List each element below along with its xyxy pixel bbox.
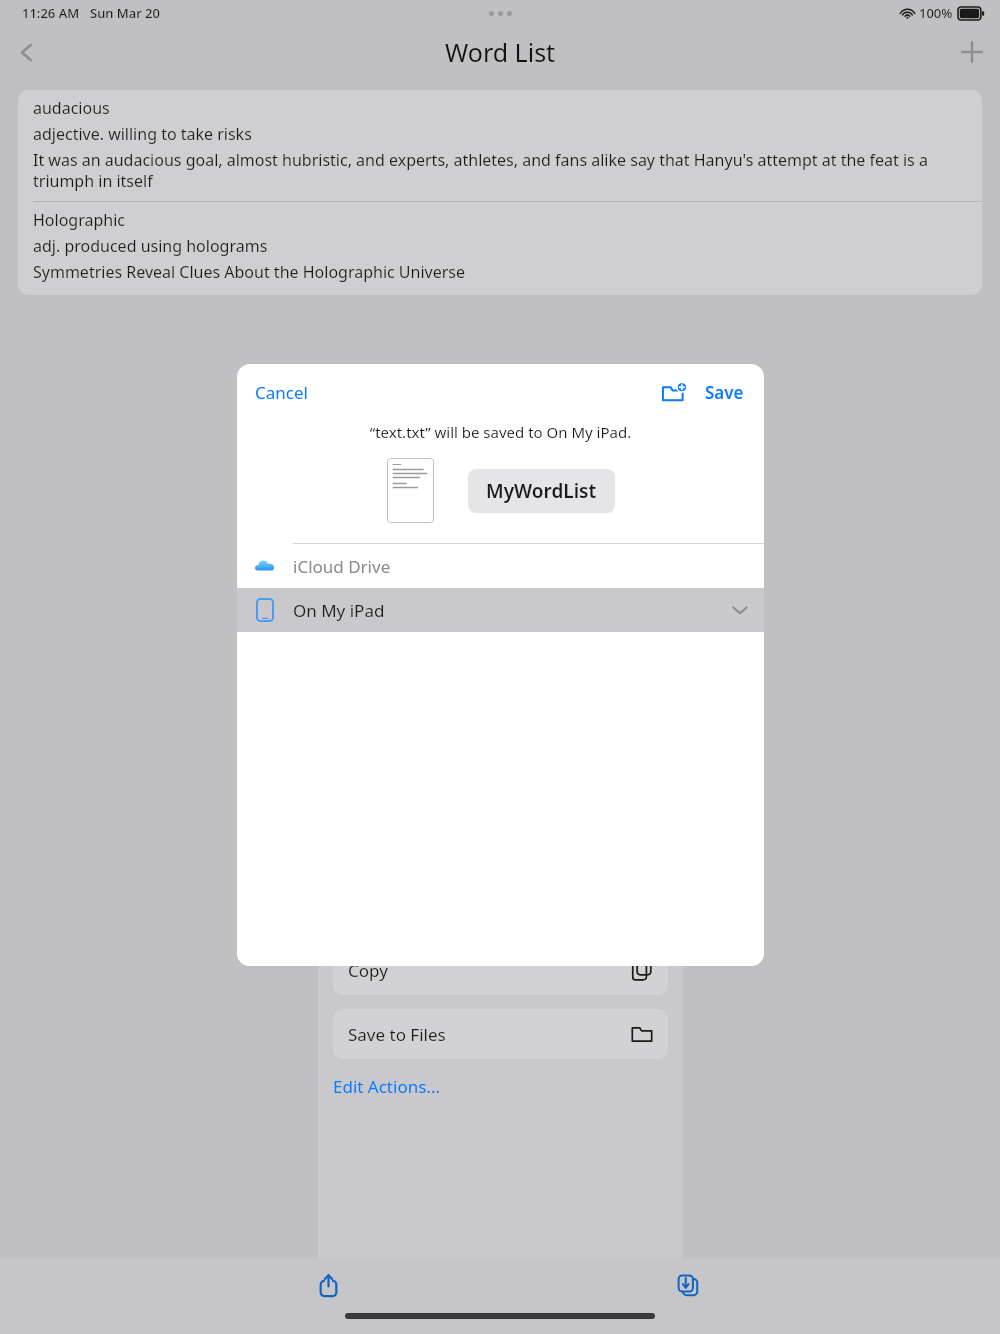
staticText: It was an audacious goal, almost hubrist… bbox=[33, 149, 967, 192]
staticText: Word List bbox=[445, 35, 556, 69]
staticText: On My iPad bbox=[293, 599, 385, 622]
staticText: 11:26 AM bbox=[22, 4, 80, 22]
staticText: 100% bbox=[919, 4, 953, 22]
button[interactable]: Save bbox=[668, 1265, 708, 1305]
staticText: iCloud Drive bbox=[293, 555, 391, 578]
staticText: Cancel bbox=[255, 381, 308, 404]
button[interactable]: Holographic bbox=[18, 202, 982, 295]
staticText: Symmetries Reveal Clues About the Hologr… bbox=[33, 261, 466, 283]
button[interactable]: New Folder bbox=[655, 374, 693, 412]
button[interactable]: Share bbox=[308, 1265, 348, 1305]
button[interactable]: Save to Files bbox=[333, 1009, 668, 1059]
staticText: adj. produced using holograms bbox=[33, 235, 268, 257]
staticText: Edit Actions... bbox=[333, 1075, 440, 1098]
staticText: “text.txt” will be saved to On My iPad. bbox=[237, 422, 764, 442]
staticText: Save bbox=[705, 381, 744, 404]
staticText: Holographic bbox=[33, 209, 125, 231]
button[interactable]: Back bbox=[4, 30, 48, 74]
button[interactable]: Copy bbox=[333, 945, 668, 995]
button[interactable]: Edit Actions... bbox=[333, 1071, 440, 1102]
button[interactable]: Cancel bbox=[237, 373, 326, 412]
staticText: Copy bbox=[348, 959, 388, 982]
staticText: Save to Files bbox=[348, 1023, 446, 1046]
button[interactable]: iCloud Drive bbox=[237, 544, 764, 588]
button[interactable]: MyWordList bbox=[468, 469, 615, 513]
staticText: MyWordList bbox=[486, 478, 597, 504]
staticText: Sun Mar 20 bbox=[90, 4, 160, 22]
button[interactable]: Save bbox=[701, 373, 748, 412]
button[interactable]: On My iPad bbox=[237, 588, 764, 632]
staticText: adjective. willing to take risks bbox=[33, 123, 252, 145]
button[interactable]: audacious bbox=[18, 90, 982, 201]
button[interactable]: Add word bbox=[950, 30, 994, 74]
staticText: audacious bbox=[33, 97, 110, 119]
